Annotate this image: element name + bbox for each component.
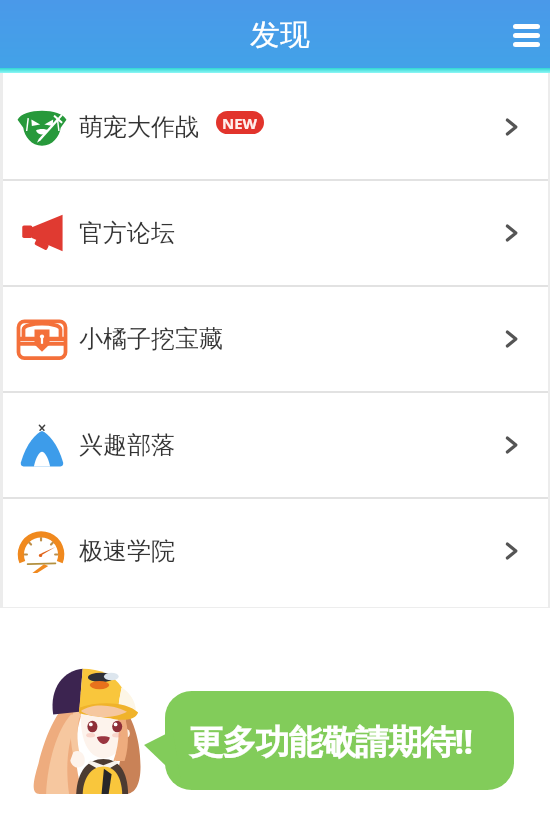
staticText: NEW: [222, 113, 258, 133]
staticText: 小橘子挖宝藏: [79, 324, 223, 354]
button[interactable]: Menu: [503, 11, 549, 57]
button[interactable]: 官方论坛: [0, 181, 550, 285]
staticText: 极速学院: [79, 536, 175, 566]
button[interactable]: 极速学院: [0, 499, 550, 603]
button[interactable]: 小橘子挖宝藏: [0, 287, 550, 391]
staticText: 发现: [250, 16, 310, 54]
button[interactable]: 兴趣部落: [0, 393, 550, 497]
button[interactable]: 更多功能敬請期待!!: [165, 691, 514, 790]
staticText: 官方论坛: [79, 218, 175, 248]
staticText: 更多功能敬請期待!!: [189, 718, 473, 764]
staticText: 萌宠大作战: [79, 112, 199, 142]
staticText: 兴趣部落: [79, 430, 175, 460]
button[interactable]: 萌宠大作战: [0, 75, 550, 179]
